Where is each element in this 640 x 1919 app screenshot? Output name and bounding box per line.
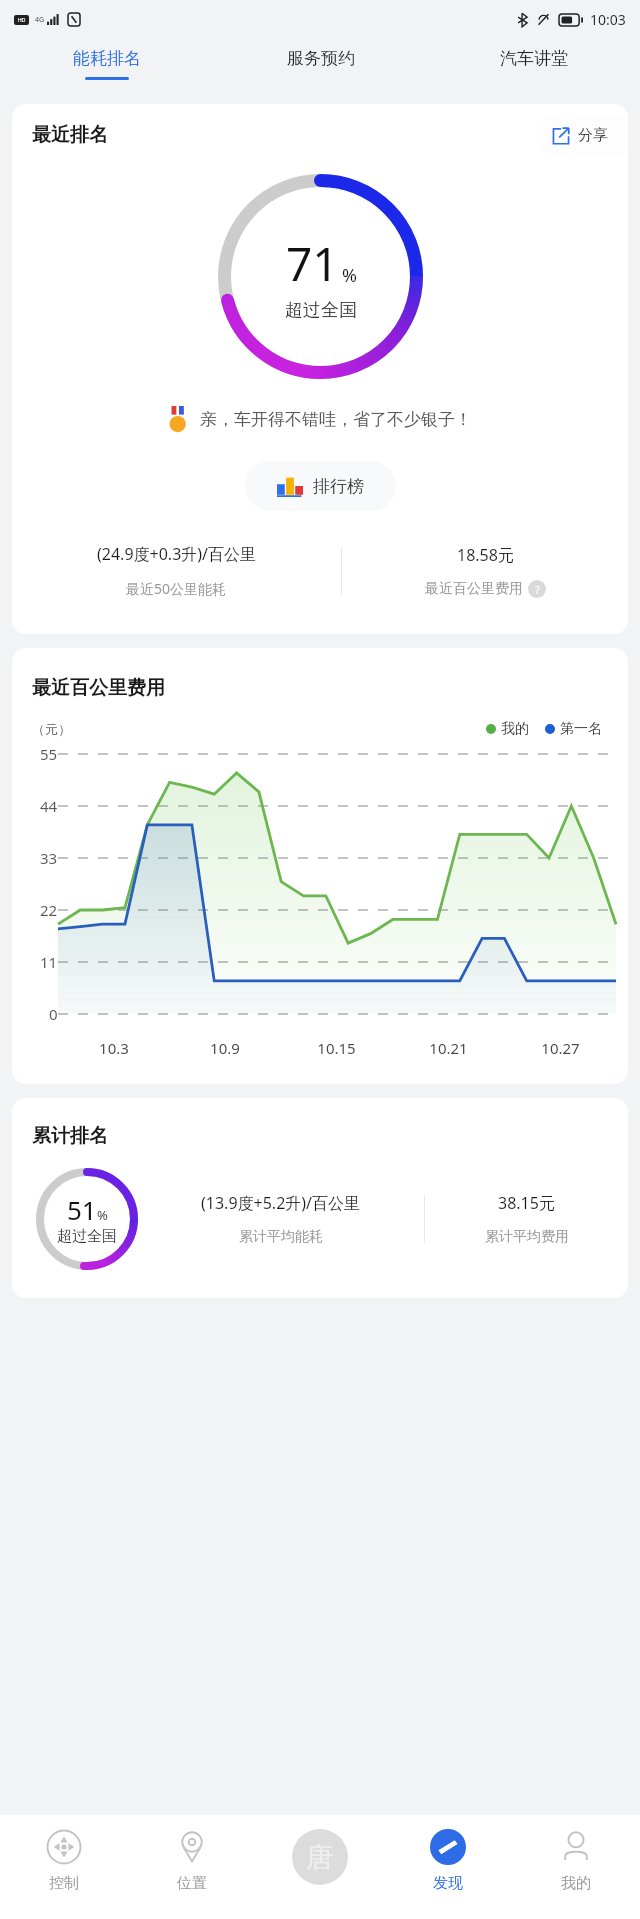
staticText: 累计平均费用	[485, 1228, 569, 1246]
button[interactable]: 能耗排名	[0, 38, 214, 90]
staticText: 排行榜	[313, 476, 364, 497]
staticText: 51	[67, 1192, 97, 1227]
button[interactable]: 发现	[384, 1829, 512, 1919]
staticText: 累计平均能耗	[239, 1228, 323, 1246]
staticText: 发现	[433, 1874, 463, 1893]
other: 分享	[552, 127, 570, 145]
staticText: ?	[535, 582, 540, 597]
staticText: 10.27	[541, 1038, 580, 1058]
button[interactable]: 位置	[128, 1829, 256, 1919]
button[interactable]: 说明	[528, 580, 546, 598]
button[interactable]: 控制	[0, 1829, 128, 1919]
staticText: 最近50公里能耗	[126, 579, 227, 598]
staticText: 累计排名	[32, 1124, 108, 1148]
staticText: (24.9度+0.3升)/百公里	[97, 543, 257, 565]
staticText: (13.9度+5.2升)/百公里	[201, 1192, 361, 1214]
staticText: 最近百公里费用	[425, 580, 523, 598]
staticText: 55	[40, 744, 58, 764]
staticText: 10:03	[590, 10, 626, 29]
staticText: 10.15	[317, 1038, 356, 1058]
staticText: 控制	[49, 1874, 79, 1893]
button[interactable]: 分享	[534, 116, 628, 155]
staticText: HD	[18, 17, 26, 24]
staticText: 我的	[501, 720, 529, 738]
staticText: 18.58元	[457, 544, 514, 566]
staticText: 位置	[177, 1874, 207, 1893]
button[interactable]: 唐	[256, 1829, 384, 1919]
staticText: 10.3	[99, 1038, 129, 1058]
staticText: 4G	[35, 15, 45, 25]
staticText: 服务预约	[287, 48, 355, 69]
staticText: （元）	[32, 721, 71, 737]
staticText: 11	[40, 952, 58, 972]
staticText: 我的	[561, 1874, 591, 1893]
staticText: 超过全国	[57, 1227, 117, 1246]
button[interactable]: 我的	[512, 1829, 640, 1919]
staticText: 汽车讲堂	[500, 48, 568, 69]
staticText: 10.9	[210, 1038, 240, 1058]
staticText: 33	[40, 848, 58, 868]
staticText: %	[342, 263, 357, 288]
staticText: 最近百公里费用	[32, 676, 165, 700]
staticText: 第一名	[560, 720, 602, 738]
staticText: 38.15元	[498, 1192, 555, 1214]
staticText: 能耗排名	[73, 48, 141, 69]
staticText: 最近排名	[32, 123, 108, 147]
staticText: 0	[49, 1004, 58, 1024]
button[interactable]: 服务预约	[214, 38, 427, 90]
staticText: 22	[40, 900, 58, 920]
staticText: 44	[40, 796, 58, 816]
staticText: 71	[286, 232, 339, 295]
staticText: 超过全国	[285, 299, 357, 322]
staticText: 亲，车开得不错哇，省了不少银子！	[200, 409, 472, 430]
staticText: 10.21	[429, 1038, 468, 1058]
button[interactable]: 汽车讲堂	[427, 38, 640, 90]
staticText: 唐	[306, 1840, 334, 1875]
button[interactable]: 排行榜	[245, 461, 396, 511]
staticText: 分享	[578, 126, 608, 145]
staticText: %	[97, 1206, 108, 1224]
